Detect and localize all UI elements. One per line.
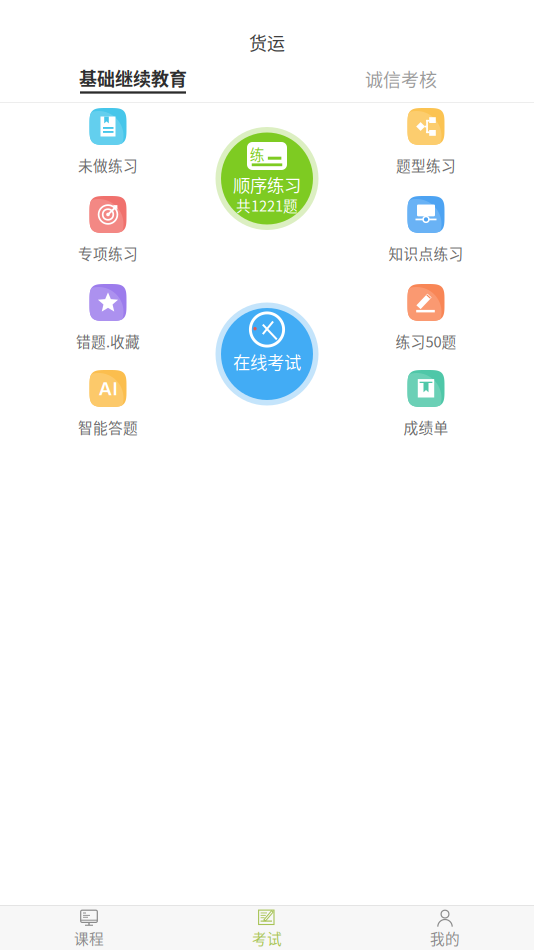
staticText: 我的 [430, 927, 460, 949]
staticText: 共1221题 [236, 194, 298, 216]
staticText: 在线考试 [233, 349, 301, 374]
button[interactable]: AI [38, 370, 178, 442]
staticText: 顺序练习 [233, 172, 301, 197]
staticText: AI [98, 377, 117, 400]
button[interactable]: 我的 [356, 906, 534, 950]
button[interactable]: 诚信考核 [331, 51, 471, 107]
staticText: 课程 [74, 927, 104, 949]
button[interactable]: 题型练习 [356, 108, 496, 180]
button[interactable]: 课程 [0, 906, 178, 950]
staticText: 题型练习 [396, 154, 456, 176]
button[interactable]: 考试 [178, 906, 356, 950]
staticText: 未做练习 [78, 154, 138, 176]
button[interactable]: 未做练习 [38, 108, 178, 180]
staticText: 考试 [252, 927, 282, 949]
button[interactable]: 练 [215, 126, 319, 230]
button[interactable]: 基础继续教育 [63, 51, 203, 107]
button[interactable]: 成绩单 [356, 370, 496, 442]
button[interactable]: 练习50题 [356, 284, 496, 356]
staticText: 专项练习 [78, 242, 138, 264]
staticText: 错题.收藏 [76, 330, 140, 352]
staticText: 成绩单 [403, 416, 448, 438]
staticText: 基础继续教育 [79, 65, 187, 91]
button[interactable]: 在线考试 [215, 302, 319, 406]
button[interactable]: 错题.收藏 [38, 284, 178, 356]
staticText: 知识点练习 [388, 242, 463, 264]
staticText: 货运 [249, 29, 285, 56]
button[interactable]: 知识点练习 [356, 196, 496, 268]
staticText: 智能答题 [78, 416, 138, 438]
staticText: 练 [250, 143, 265, 164]
staticText: 诚信考核 [365, 66, 437, 92]
staticText: 练习50题 [395, 330, 456, 352]
button[interactable]: 专项练习 [38, 196, 178, 268]
